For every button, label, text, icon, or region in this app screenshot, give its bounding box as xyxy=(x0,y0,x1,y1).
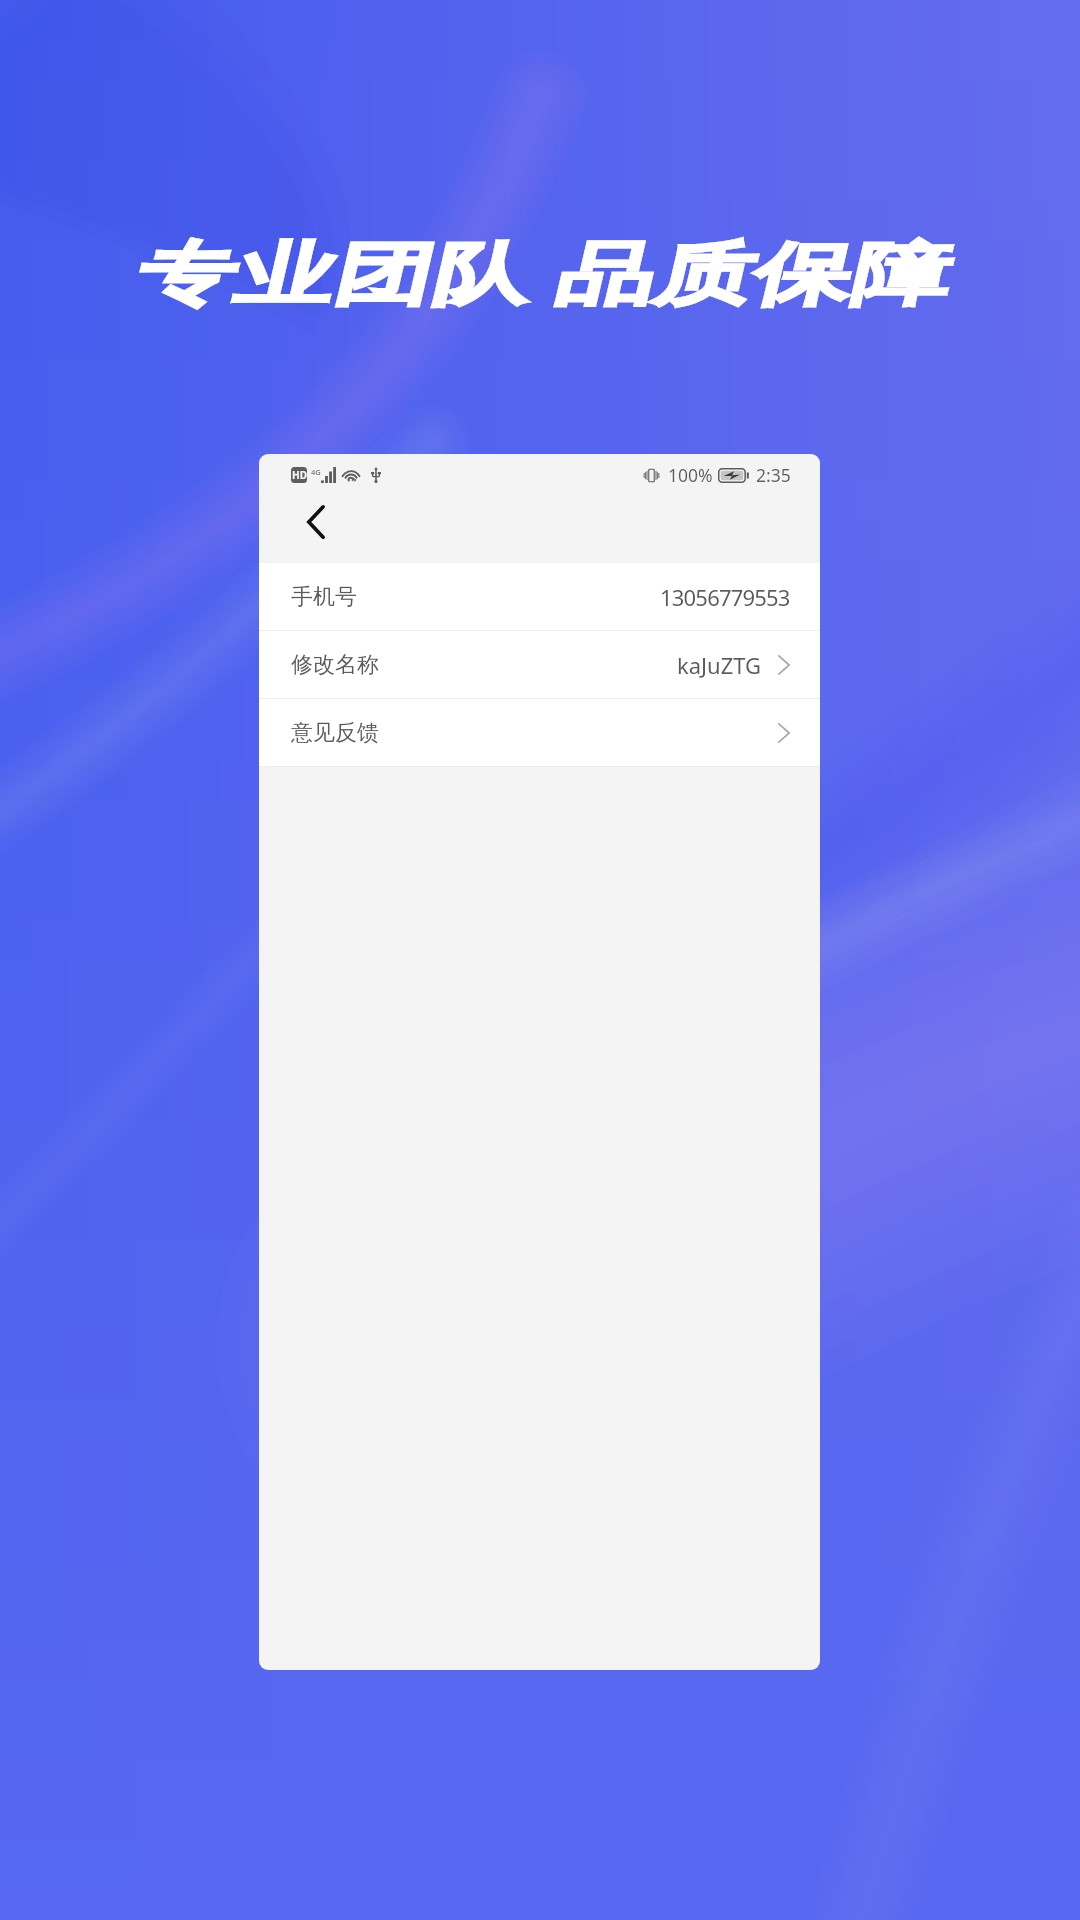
staticText: HD xyxy=(292,468,307,482)
staticText: 13056779553 xyxy=(660,582,790,612)
staticText: 4G xyxy=(311,467,321,477)
staticText: 意见反馈 xyxy=(291,719,379,747)
button[interactable]: Back xyxy=(288,494,344,550)
staticText: kaJuZTG xyxy=(677,650,762,680)
staticText: 专业团队 品质保障 xyxy=(0,225,1080,318)
button[interactable]: 手机号 xyxy=(259,563,820,630)
staticText: 修改名称 xyxy=(291,651,379,679)
staticText: 100% xyxy=(668,463,713,487)
button[interactable]: 意见反馈 xyxy=(259,699,820,766)
staticText: 手机号 xyxy=(291,583,357,611)
button[interactable]: 修改名称 xyxy=(259,631,820,698)
staticText: 2:35 xyxy=(756,463,791,487)
